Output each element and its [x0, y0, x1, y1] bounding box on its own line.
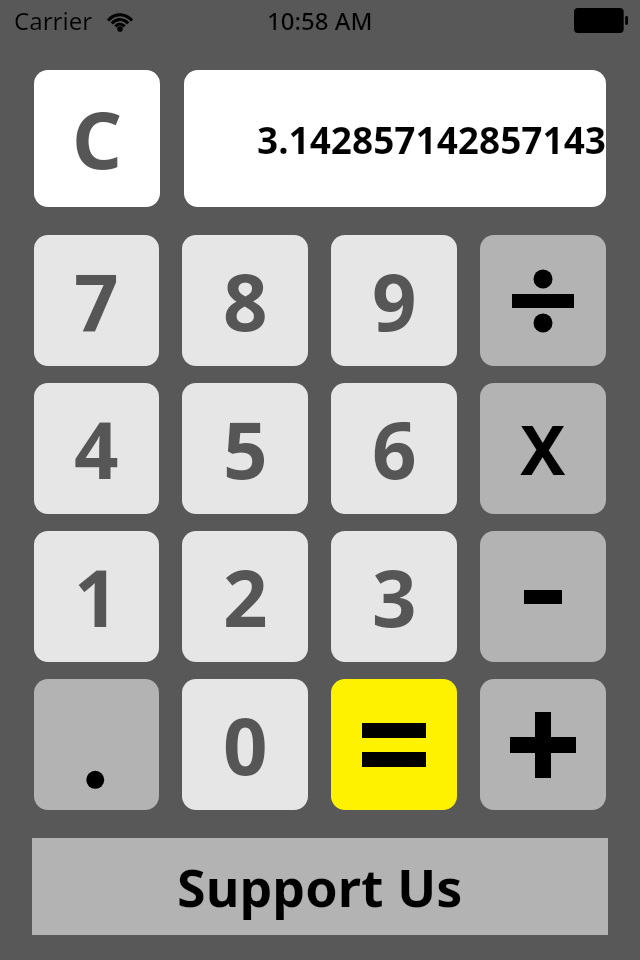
- staticText: 2: [223, 544, 268, 650]
- button[interactable]: 1: [34, 531, 159, 662]
- button[interactable]: Decimal point: [34, 679, 159, 810]
- button[interactable]: Divide: [480, 235, 606, 366]
- staticText: Support Us: [177, 851, 463, 922]
- staticText: X: [520, 402, 566, 495]
- staticText: Carrier: [14, 4, 93, 37]
- staticText: 0: [223, 692, 268, 798]
- staticText: 6: [372, 396, 417, 502]
- button[interactable]: 0: [182, 679, 308, 810]
- staticText: 7: [74, 248, 119, 354]
- staticText: 9: [372, 248, 417, 354]
- staticText: 3.142857142857143: [256, 114, 606, 164]
- staticText: 4: [74, 396, 119, 502]
- button[interactable]: 5: [182, 383, 308, 514]
- staticText: 5: [223, 396, 268, 502]
- button[interactable]: Support Us: [32, 838, 608, 935]
- button[interactable]: 8: [182, 235, 308, 366]
- button[interactable]: Equals: [331, 679, 457, 810]
- staticText: C: [72, 86, 123, 192]
- staticText: 1: [74, 544, 119, 650]
- button[interactable]: 9: [331, 235, 457, 366]
- button[interactable]: Subtract: [480, 531, 606, 662]
- staticText: 3: [372, 544, 417, 650]
- button[interactable]: 7: [34, 235, 159, 366]
- button[interactable]: Add: [480, 679, 606, 810]
- button[interactable]: C: [34, 70, 160, 207]
- staticText: 8: [223, 248, 268, 354]
- button[interactable]: Multiply: [480, 383, 606, 514]
- button[interactable]: 2: [182, 531, 308, 662]
- button[interactable]: 4: [34, 383, 159, 514]
- button[interactable]: 3: [331, 531, 457, 662]
- button[interactable]: 6: [331, 383, 457, 514]
- staticText: 10:58 AM: [267, 4, 373, 37]
